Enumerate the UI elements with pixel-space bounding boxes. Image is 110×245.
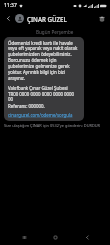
button[interactable]: Recent apps <box>16 229 32 245</box>
button[interactable]: Ödemenizi kredi kartı ile havale veya ef… <box>4 37 84 121</box>
button[interactable]: Home <box>47 229 63 245</box>
staticText: Bugün Perşembe <box>36 29 74 35</box>
staticText: Size ulaştığım ÇINAR için 0532'ye gönder… <box>4 123 101 128</box>
button[interactable]: Back <box>3 13 14 24</box>
staticText: TR00 0000 0000 0000 0000 0000 00 <box>8 91 80 103</box>
button[interactable]: Delete <box>96 13 107 24</box>
button[interactable]: ÇINAR GÜZEL <box>15 14 96 23</box>
button[interactable]: cinarguzel.com/odeme/sorgula <box>8 112 73 118</box>
staticText: Ödemenizi kredi kartı ile havale veya ef… <box>8 40 80 82</box>
staticText: 11:37 <box>4 2 17 9</box>
staticText: ÇINAR GÜZEL <box>27 15 67 23</box>
staticText: Vakıfbank Çınar Güzel Şubesi <box>8 85 68 91</box>
button[interactable]: Back <box>79 229 95 245</box>
staticText: Referans: 000000. <box>8 103 45 109</box>
